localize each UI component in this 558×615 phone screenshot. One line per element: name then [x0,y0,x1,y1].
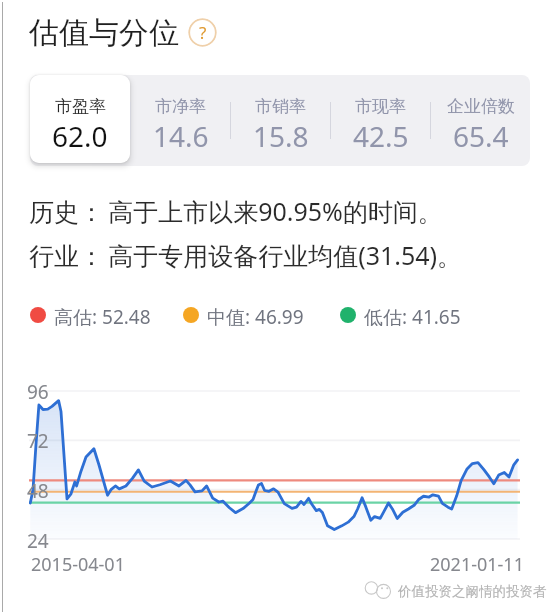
button[interactable]: Help [188,18,217,47]
staticText: 市盈率 [55,96,106,117]
button[interactable]: 低估: 41.65 [340,304,461,326]
staticText: 高估: 52.48 [54,304,151,326]
staticText: 48 [27,478,49,502]
staticText: 企业倍数 [447,96,515,117]
button[interactable]: 市销率 [231,75,330,166]
staticText: 低估: 41.65 [364,304,461,326]
staticText: 62.0 [52,117,108,155]
staticText: 市现率 [355,96,406,117]
staticText: 65.4 [453,117,509,155]
staticText: 市销率 [255,96,306,117]
staticText: 行业： 高于专用设备行业均值(31.54)。 [29,238,463,272]
staticText: 24 [27,528,49,552]
staticText: 2021-01-11 [430,552,524,577]
staticText: 价值投资之阚情的投资者 [398,583,547,600]
button[interactable]: 市现率 [331,75,430,166]
staticText: 15.8 [253,117,309,155]
staticText: 14.6 [153,117,209,155]
staticText: ? [199,21,207,44]
staticText: 42.5 [353,117,409,155]
button[interactable]: 市盈率 [30,75,130,166]
staticText: 市净率 [155,96,206,117]
staticText: 2015-04-01 [31,552,125,577]
staticText: 中值: 46.99 [207,304,304,326]
staticText: 估值与分位 [29,14,179,50]
staticText: 72 [27,428,49,452]
button[interactable]: 企业倍数 [431,75,530,166]
button[interactable]: 市净率 [131,75,230,166]
staticText: 96 [27,379,49,403]
button[interactable]: 高估: 52.48 [30,304,151,326]
button[interactable]: 中值: 46.99 [183,304,304,326]
staticText: 历史： 高于上市以来90.95%的时间。 [29,194,443,228]
